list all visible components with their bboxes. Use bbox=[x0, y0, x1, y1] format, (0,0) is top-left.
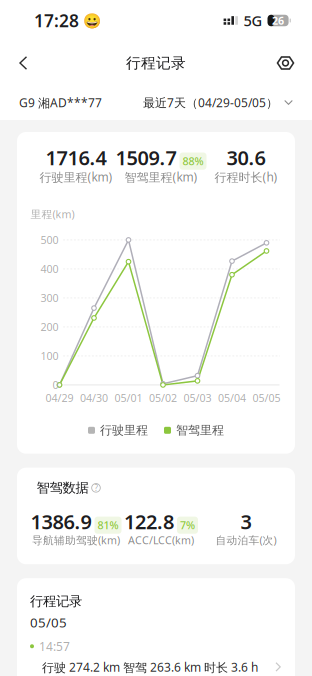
staticText: 300 bbox=[40, 291, 58, 305]
staticText: ? bbox=[94, 483, 97, 493]
staticText: 04/29 bbox=[45, 391, 73, 405]
staticText: 500 bbox=[40, 233, 58, 247]
staticText: 行程记录 bbox=[126, 54, 186, 72]
staticText: 导航辅助驾驶(km) bbox=[32, 533, 120, 547]
staticText: 里程(km) bbox=[30, 207, 74, 221]
staticText: 0 bbox=[52, 378, 58, 392]
staticText: 1386.9 bbox=[30, 508, 91, 535]
button[interactable]: 最近7天（04/29-05/05） bbox=[143, 87, 293, 117]
staticText: 😀 bbox=[79, 11, 101, 30]
staticText: 14:57 bbox=[39, 638, 70, 654]
staticText: 行程时长(h) bbox=[214, 169, 277, 185]
staticText: 81% bbox=[97, 518, 118, 532]
staticText: 1716.4 bbox=[45, 144, 106, 171]
staticText: 行驶 274.2 km 智驾 263.6 km 时长 3.6 h bbox=[42, 659, 258, 675]
staticText: 30.6 bbox=[226, 144, 265, 171]
staticText: 行程记录 bbox=[30, 593, 82, 610]
staticText: 05/04 bbox=[218, 391, 246, 405]
staticText: 122.8 bbox=[124, 508, 174, 535]
staticText: 05/05 bbox=[252, 391, 280, 405]
staticText: 05/03 bbox=[183, 391, 211, 405]
button[interactable]: 返回 bbox=[8, 47, 39, 79]
staticText: 04/30 bbox=[80, 391, 108, 405]
staticText: 05/01 bbox=[114, 391, 142, 405]
staticText: 5G bbox=[244, 11, 263, 30]
staticText: 200 bbox=[40, 320, 58, 334]
staticText: 自动泊车(次) bbox=[215, 533, 276, 547]
staticText: 26 bbox=[272, 13, 284, 28]
staticText: 17:28 bbox=[34, 9, 79, 32]
staticText: 智驾数据 bbox=[36, 480, 88, 496]
staticText: 行驶里程 bbox=[100, 423, 148, 438]
staticText: 05/02 bbox=[149, 391, 177, 405]
button[interactable]: 14:57 bbox=[17, 631, 295, 676]
staticText: 100 bbox=[40, 349, 58, 363]
staticText: 3 bbox=[240, 508, 251, 535]
button[interactable]: G9 湘AD***77 bbox=[19, 87, 102, 117]
staticText: 400 bbox=[40, 262, 58, 276]
staticText: 88% bbox=[182, 154, 203, 168]
button[interactable]: 设置 bbox=[267, 46, 304, 79]
staticText: 智驾里程(km) bbox=[124, 169, 197, 185]
staticText: 最近7天（04/29-05/05） bbox=[143, 94, 278, 110]
staticText: 7% bbox=[180, 518, 195, 532]
staticText: ACC/LCC(km) bbox=[128, 533, 194, 547]
staticText: 智驾里程 bbox=[176, 423, 224, 438]
staticText: G9 湘AD***77 bbox=[19, 94, 102, 110]
staticText: 行驶里程(km) bbox=[39, 169, 112, 185]
staticText: 05/05 bbox=[30, 614, 67, 631]
staticText: 1509.7 bbox=[115, 144, 176, 171]
